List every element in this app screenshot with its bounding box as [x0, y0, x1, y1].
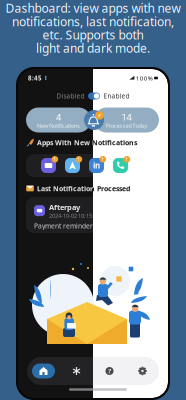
staticText: Payment reminder: [34, 221, 93, 230]
staticText: in: [93, 160, 100, 171]
button[interactable]: Messages: [41, 156, 56, 175]
staticText: 14: [121, 111, 131, 123]
staticText: 1: [125, 156, 128, 162]
button[interactable]: Home: [27, 357, 60, 385]
staticText: New Notifications: [37, 122, 80, 129]
staticText: 1: [101, 156, 104, 162]
button[interactable]: Help: [93, 357, 126, 385]
button[interactable]: Home: [27, 357, 60, 385]
button[interactable]: Apps: [60, 357, 93, 385]
staticText: 100%: [136, 74, 153, 82]
button[interactable]: Settings: [126, 357, 159, 385]
button[interactable]: Help: [93, 357, 126, 385]
staticText: 2024-10-02 10:15: [49, 212, 92, 219]
staticText: 1: [53, 156, 56, 162]
staticText: Dashboard: view apps with new: [5, 0, 180, 16]
button[interactable]: WhatsApp: [113, 156, 128, 175]
button[interactable]: Messages: [41, 156, 56, 175]
staticText: Afterpay: [49, 202, 80, 212]
staticText: Disabled: [56, 92, 84, 100]
button[interactable]: 4: [26, 107, 91, 132]
staticText: notifications, last notification,: [12, 13, 174, 30]
staticText: 1: [101, 156, 104, 162]
staticText: 1: [53, 156, 56, 162]
staticText: 4: [56, 111, 61, 123]
staticText: Apps With New Notifications: [37, 138, 137, 147]
staticText: 8:45: [28, 74, 42, 82]
staticText: 1: [77, 156, 80, 162]
staticText: Last Notification Processed: [37, 184, 130, 193]
staticText: Afterpay: [49, 202, 80, 212]
staticText: 1: [77, 156, 80, 162]
staticText: ?: [108, 366, 111, 376]
staticText: in: [93, 160, 100, 171]
button[interactable]: Apps: [60, 357, 93, 385]
button[interactable]: Telegram: [65, 156, 80, 175]
staticText: ?: [108, 366, 111, 376]
button[interactable]: 14: [94, 107, 159, 132]
staticText: Processed Today: [105, 122, 147, 129]
button[interactable]: WhatsApp: [113, 156, 128, 175]
staticText: 14: [121, 111, 131, 123]
button[interactable]: Afterpay payment reminder: [26, 197, 159, 233]
staticText: 100%: [136, 74, 153, 82]
staticText: Apps With New Notifications: [37, 138, 137, 147]
button[interactable]: Notifications enabled: [88, 91, 100, 100]
button[interactable]: LinkedIn: [89, 156, 104, 175]
button[interactable]: Afterpay payment reminder: [26, 197, 159, 233]
staticText: light and dark mode.: [36, 40, 150, 56]
staticText: Processed Today: [105, 122, 147, 129]
staticText: Last Notification Processed: [37, 184, 130, 193]
staticText: Payment reminder: [34, 221, 93, 230]
button[interactable]: Settings: [126, 357, 159, 385]
staticText: 1: [125, 156, 128, 162]
button[interactable]: 14: [94, 107, 159, 132]
staticText: 8:45: [28, 74, 42, 82]
staticText: Enabled: [103, 92, 129, 100]
button[interactable]: Notifications enabled: [88, 91, 100, 100]
button[interactable]: LinkedIn: [89, 156, 104, 175]
staticText: Enabled: [103, 92, 129, 100]
staticText: New Notifications: [37, 122, 80, 129]
button[interactable]: 4: [26, 107, 91, 132]
staticText: 2024-10-02 10:15: [49, 212, 92, 219]
button[interactable]: Telegram: [65, 156, 80, 175]
staticText: Disabled: [56, 92, 84, 100]
staticText: 4: [56, 111, 61, 123]
staticText: etc. Supports both: [42, 27, 143, 43]
